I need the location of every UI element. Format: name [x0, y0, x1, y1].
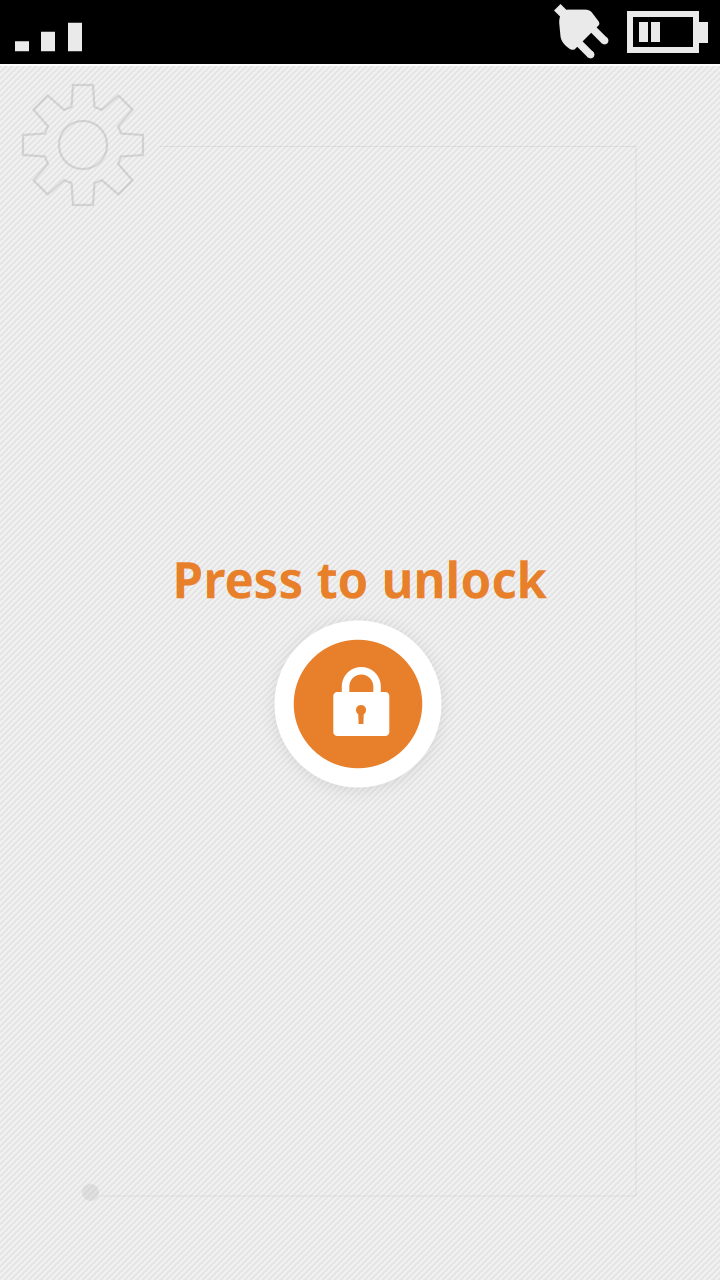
- button[interactable]: Settings: [21, 83, 145, 207]
- button[interactable]: Unlock: [274, 620, 441, 787]
- staticText: Press to unlock: [172, 546, 547, 612]
